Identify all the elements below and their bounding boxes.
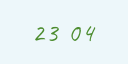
staticText: 23 04: [32, 16, 96, 49]
